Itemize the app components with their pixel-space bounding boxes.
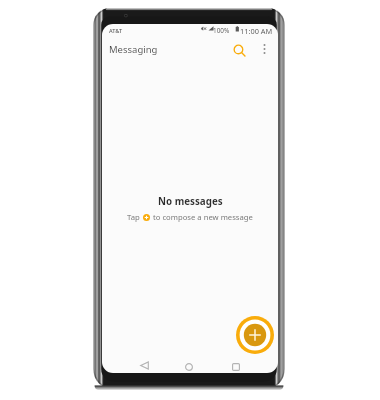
staticText: 100% <box>213 26 230 35</box>
staticText: Tap <box>127 212 140 222</box>
staticText: 11:00 AM <box>240 26 273 36</box>
button[interactable]: Back <box>135 356 153 373</box>
button[interactable]: Compose new message <box>235 315 275 355</box>
button[interactable]: Home <box>180 358 198 373</box>
button[interactable]: More options <box>253 38 275 60</box>
staticText: No messages <box>158 195 223 208</box>
staticText: Messaging <box>109 43 158 56</box>
staticText: AT&T <box>109 27 123 35</box>
button[interactable]: Recent apps <box>227 358 245 373</box>
button[interactable]: Search <box>227 38 251 62</box>
staticText: to compose a new message <box>153 212 253 222</box>
